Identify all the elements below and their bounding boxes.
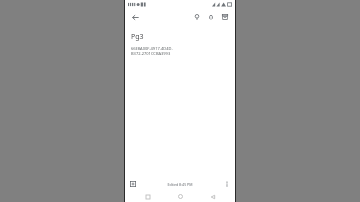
button[interactable]: Back [203,191,223,202]
button[interactable]: Home [170,191,190,202]
button[interactable]: Back [129,11,141,23]
button[interactable]: Edited 8:45 PM [167,182,193,187]
button[interactable]: Reminder [205,11,217,23]
button[interactable]: More options [222,179,232,189]
button[interactable]: Pin note [191,11,203,23]
button[interactable]: 66E8A00F-4917-4D4D-B372-2701CCBA3993 [131,46,200,56]
button[interactable]: Recent apps [138,191,158,202]
button[interactable]: Add [128,179,138,189]
button[interactable]: Archive [219,11,231,23]
button[interactable]: Pg3 [131,32,144,42]
